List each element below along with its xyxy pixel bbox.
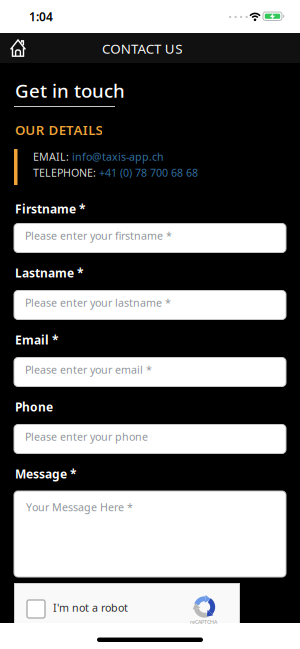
staticText: Lastname * [15, 265, 84, 281]
button[interactable]: I'm not a robot [27, 600, 45, 618]
staticText: Your Message Here * [26, 500, 133, 514]
staticText: I'm not a robot [53, 600, 128, 615]
staticText: TELEPHONE: [33, 165, 99, 180]
button[interactable]: Please enter your lastname * [14, 290, 286, 319]
button[interactable]: info@taxis-app.ch [72, 149, 164, 164]
staticText: CONTACT US [102, 40, 182, 57]
staticText: reCAPTCHA [190, 618, 217, 626]
staticText: Please enter your lastname * [25, 295, 171, 310]
button[interactable]: Your Message Here [14, 491, 286, 577]
button[interactable]: Home [0, 33, 32, 62]
staticText: Please enter your email * [25, 362, 152, 377]
staticText: Firstname * [15, 201, 86, 217]
staticText: +41 (0) 78 700 68 68 [99, 165, 198, 180]
button[interactable]: +41 (0) 78 700 68 68 [99, 165, 198, 180]
staticText: Get in touch [15, 78, 125, 103]
staticText: Please enter your phone [25, 429, 148, 444]
button[interactable]: Please enter your phone [14, 424, 286, 453]
staticText: Phone [15, 399, 53, 415]
staticText: EMAIL: [33, 149, 72, 164]
button[interactable]: Please enter your email * [14, 357, 286, 386]
staticText: OUR DETAILS [15, 121, 102, 139]
staticText: 1:04 [29, 9, 53, 25]
button[interactable]: Please enter your firstname * [14, 223, 286, 252]
staticText: Email * [15, 332, 59, 348]
staticText: Message * [15, 466, 77, 482]
staticText: info@taxis-app.ch [72, 149, 164, 164]
staticText: Please enter your firstname * [25, 228, 172, 243]
